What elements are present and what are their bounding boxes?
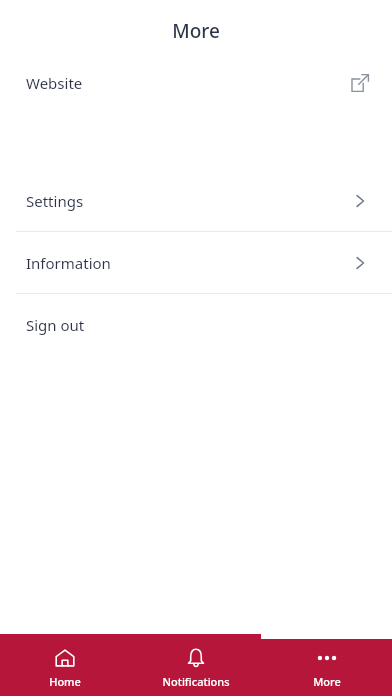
staticText: More bbox=[313, 674, 341, 689]
button[interactable]: Sign out bbox=[0, 294, 392, 355]
button[interactable]: More bbox=[261, 641, 392, 695]
button[interactable]: Home bbox=[0, 641, 130, 695]
button[interactable]: Notifications bbox=[130, 641, 261, 695]
other: Open website bbox=[350, 73, 370, 93]
staticText: Home bbox=[49, 674, 81, 689]
staticText: Sign out bbox=[26, 315, 85, 335]
staticText: Information bbox=[26, 253, 111, 273]
button[interactable]: Information bbox=[0, 232, 392, 293]
staticText: Notifications bbox=[162, 674, 230, 689]
staticText: More bbox=[172, 18, 220, 44]
staticText: Website bbox=[26, 73, 83, 93]
button[interactable]: Settings bbox=[0, 170, 392, 231]
staticText: Settings bbox=[26, 191, 84, 211]
button[interactable]: Website bbox=[0, 62, 392, 104]
